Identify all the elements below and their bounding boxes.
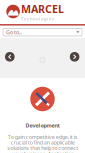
staticText: T e c h n o l o g i e s [21,16,54,21]
staticText: Development [25,122,59,129]
button[interactable]: Go to... [3,28,82,36]
staticText: To gain competitive edge, it is crucial … [7,133,78,153]
staticText: MARCEL [21,2,64,16]
staticText: Go to... [6,29,22,36]
button[interactable]: Previous [5,52,15,62]
button[interactable]: Next [70,52,79,62]
